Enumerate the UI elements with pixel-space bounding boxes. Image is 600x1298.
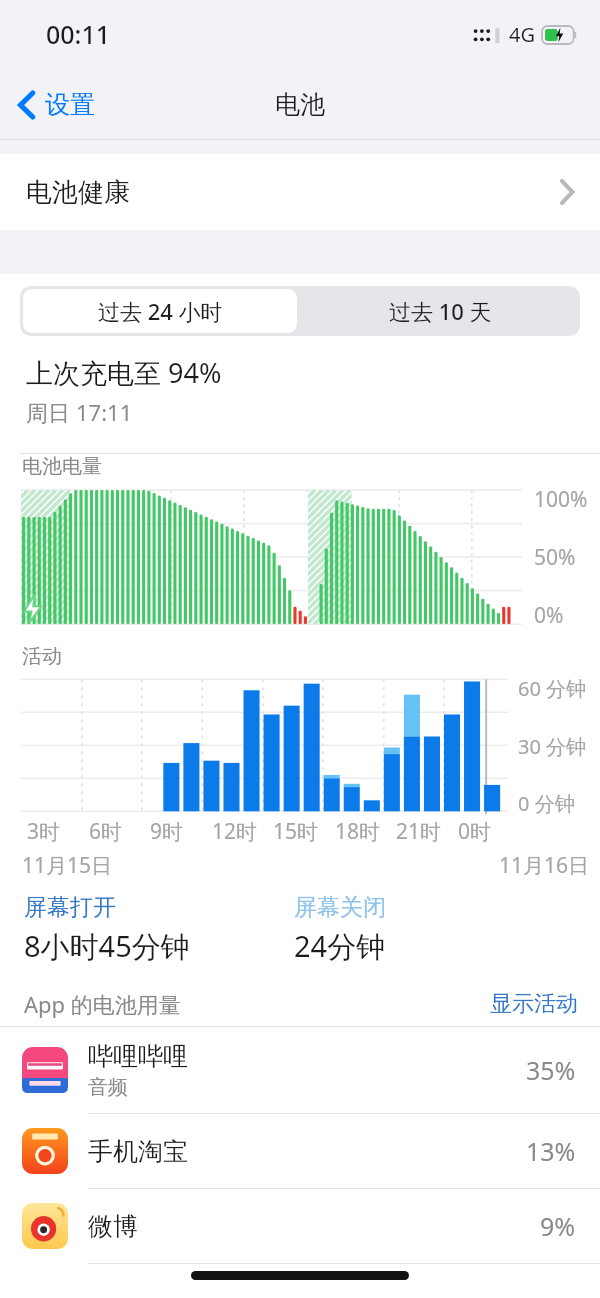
staticText: 周日 [26,397,76,427]
staticText: 11月16日 [499,851,590,880]
button[interactable]: 过去 10 天 [300,286,580,336]
staticText: 9时 [150,817,184,846]
staticText: 17:11 [76,397,133,427]
staticText: 18时 [335,817,381,846]
button[interactable]: 微博 [0,1189,600,1263]
staticText: 过去 10 天 [389,296,492,326]
staticText: 电池电量 [22,454,102,479]
staticText: 上次充电至 94% [26,354,222,391]
staticText: 11月15日 [22,851,113,880]
staticText: 设置 [45,89,95,120]
staticText: 6时 [89,817,123,846]
staticText: 60 分钟 [518,675,587,702]
staticText: 4G [509,21,535,48]
staticText: 活动 [22,644,62,669]
staticText: 0 分钟 [518,790,575,817]
staticText: 30 分钟 [518,733,587,760]
staticText: App 的电池用量 [24,989,181,1019]
staticText: 0时 [458,817,492,846]
staticText: 微博 [88,1211,138,1242]
staticText: 屏幕打开 [24,893,116,922]
staticText: 8小时45分钟 [24,926,190,966]
staticText: 3时 [27,817,61,846]
staticText: 显示活动 [490,990,578,1018]
staticText: 35% [526,1053,576,1087]
button[interactable]: 显示活动 [468,986,600,1022]
staticText: 12时 [212,817,258,846]
button[interactable]: 手机淘宝 [0,1114,600,1188]
button[interactable]: 哔哩哔哩 [0,1027,600,1113]
staticText: 过去 24 小时 [98,296,223,326]
staticText: 24分钟 [294,926,386,966]
staticText: 屏幕关闭 [294,893,386,922]
button[interactable]: 设置 [12,83,101,126]
staticText: 50% [534,543,576,572]
staticText: 手机淘宝 [88,1136,188,1167]
staticText: 100% [534,485,588,514]
staticText: 电池健康 [26,176,130,209]
button[interactable]: 过去 24 小时 [23,289,297,333]
staticText: 电池 [275,89,325,120]
staticText: 00:11 [46,17,111,51]
staticText: 21时 [396,817,442,846]
staticText: 9% [540,1209,576,1243]
staticText: 15时 [273,817,319,846]
staticText: 音频 [88,1075,128,1100]
staticText: 0% [534,601,564,630]
staticText: 哔哩哔哩 [88,1041,188,1072]
button[interactable]: 电池健康 [0,154,600,230]
staticText: 13% [526,1134,576,1168]
